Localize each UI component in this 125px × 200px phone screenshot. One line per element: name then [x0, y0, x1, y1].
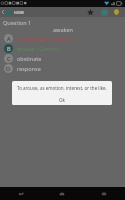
- button[interactable]: D: [0, 63, 125, 73]
- button[interactable]: Recent apps: [83, 187, 125, 200]
- staticText: Question 1: [3, 19, 32, 26]
- button[interactable]: Ok: [51, 96, 73, 104]
- staticText: awaken: [53, 26, 73, 33]
- staticText: To arouse, as emotion, interest, or the …: [17, 85, 107, 91]
- staticText: HOME: [14, 10, 25, 15]
- staticText: expenditure ( Wrong ): [17, 35, 74, 42]
- button[interactable]: Back: [0, 187, 41, 200]
- button[interactable]: Favourite: [84, 7, 96, 17]
- staticText: response: [17, 65, 41, 72]
- staticText: obstinate: [17, 55, 42, 62]
- button[interactable]: B: [0, 43, 125, 53]
- button[interactable]: HOME: [5, 7, 25, 17]
- button[interactable]: Hint: [110, 7, 122, 17]
- staticText: D: [6, 65, 11, 72]
- staticText: arouse ( Correct ): [17, 45, 62, 52]
- staticText: C: [7, 55, 11, 62]
- button[interactable]: A: [0, 33, 125, 43]
- staticText: Ok: [59, 97, 65, 103]
- staticText: B: [7, 45, 11, 52]
- button[interactable]: Home: [41, 187, 83, 200]
- staticText: A: [7, 35, 11, 42]
- button[interactable]: Navigate up: [0, 7, 5, 17]
- button[interactable]: Score: [98, 7, 110, 17]
- button[interactable]: C: [0, 53, 125, 63]
